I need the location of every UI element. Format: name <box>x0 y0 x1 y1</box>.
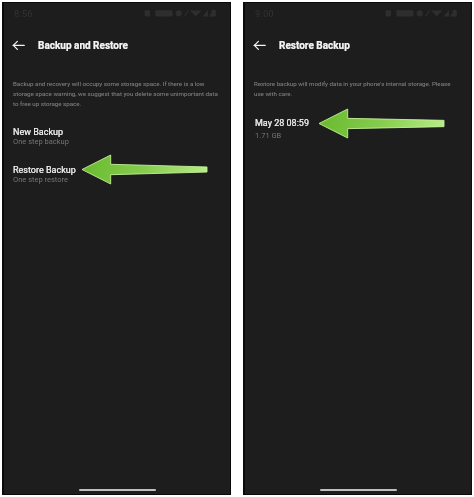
staticText: One step restore <box>13 175 68 184</box>
staticText: May 28 08:59 <box>255 118 309 129</box>
staticText: New Backup <box>13 127 63 138</box>
button[interactable]: New Backup <box>4 127 230 153</box>
staticText: Backup and recovery will occupy some sto… <box>13 80 220 107</box>
staticText: One step backup <box>13 137 69 146</box>
staticText: 9:00 <box>255 8 274 19</box>
staticText: 1.71 GB <box>255 131 282 140</box>
button[interactable]: Restore Backup <box>4 165 230 191</box>
staticText: Restore backup will modify data in your … <box>254 80 461 97</box>
button[interactable]: Restore Backup <box>279 40 350 52</box>
staticText: 8:56 <box>14 8 33 19</box>
button[interactable]: Back <box>247 34 271 58</box>
button[interactable]: May 28 08:59 <box>245 118 471 144</box>
button[interactable]: Backup and Restore <box>38 40 128 52</box>
staticText: Restore Backup <box>13 165 76 176</box>
button[interactable]: Back <box>6 34 30 58</box>
